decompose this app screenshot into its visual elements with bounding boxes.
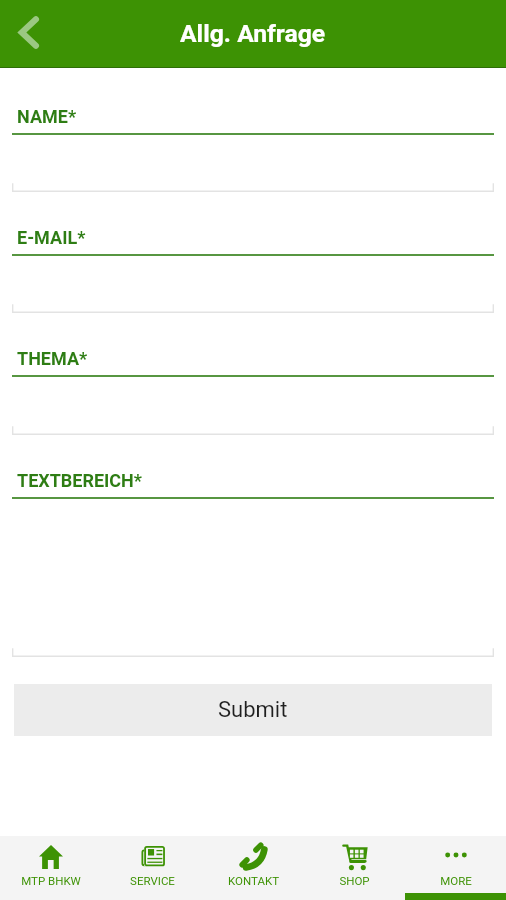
staticText: TEXTBEREICH* [17,470,142,491]
button[interactable]: SERVICE [102,836,203,900]
staticText: E-MAIL* [17,227,86,248]
button[interactable]: Submit [14,684,492,736]
button[interactable]: SHOP [304,836,405,900]
button[interactable]: KONTAKT [203,836,304,900]
staticText: Submit [218,697,288,723]
staticText: NAME* [17,106,77,127]
staticText: MORE [440,874,472,887]
staticText: Allg. Anfrage [180,19,326,48]
button[interactable]: MORE [405,836,506,900]
staticText: SHOP [339,874,370,887]
staticText: SERVICE [130,874,175,887]
button[interactable]: Back [0,4,56,60]
staticText: KONTAKT [228,874,279,887]
button[interactable]: MTP BHKW [0,836,102,900]
staticText: MTP BHKW [21,874,81,887]
staticText: THEMA* [17,348,88,369]
